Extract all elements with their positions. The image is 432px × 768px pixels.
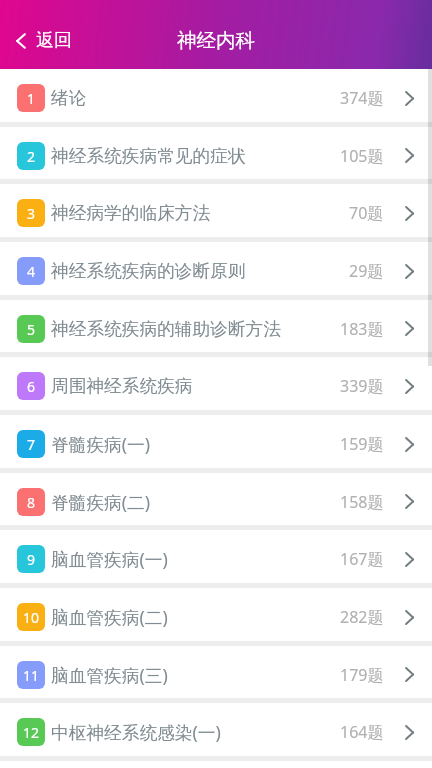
staticText: 绪论	[51, 87, 87, 109]
staticText: 158题	[340, 491, 384, 513]
staticText: 神经内科	[177, 28, 255, 53]
staticText: 1	[27, 89, 36, 108]
button[interactable]: 7	[0, 415, 432, 473]
button[interactable]: 1	[0, 69, 432, 127]
button[interactable]: 5	[0, 300, 432, 357]
button[interactable]: 4	[0, 242, 432, 300]
staticText: 脑血管疾病(三)	[51, 663, 168, 687]
staticText: 179题	[340, 664, 384, 686]
staticText: 神经系统疾病常见的症状	[51, 145, 246, 167]
staticText: 4	[27, 262, 36, 281]
button[interactable]: 9	[0, 530, 432, 588]
button[interactable]: 6	[0, 357, 432, 415]
staticText: 374题	[340, 87, 384, 109]
staticText: 脊髓疾病(二)	[51, 490, 151, 514]
staticText: 2	[27, 147, 36, 166]
staticText: 5	[27, 320, 36, 339]
staticText: 11	[23, 666, 40, 685]
staticText: 164题	[340, 721, 384, 743]
staticText: 返回	[36, 29, 72, 52]
button[interactable]: 2	[0, 127, 432, 184]
staticText: 70题	[349, 202, 384, 224]
button[interactable]: 11	[0, 646, 432, 703]
staticText: 8	[27, 493, 36, 512]
button[interactable]: 12	[0, 703, 432, 761]
staticText: 282题	[340, 606, 384, 628]
staticText: 脑血管疾病(一)	[51, 547, 168, 571]
staticText: 12	[23, 723, 40, 742]
staticText: 3	[27, 204, 36, 223]
staticText: 中枢神经系统感染(一)	[51, 720, 221, 744]
staticText: 9	[27, 550, 36, 569]
staticText: 脊髓疾病(一)	[51, 432, 151, 456]
staticText: 神经系统疾病的诊断原则	[51, 260, 246, 282]
staticText: 183题	[340, 318, 384, 340]
button[interactable]: 8	[0, 473, 432, 530]
staticText: 105题	[340, 145, 384, 167]
button[interactable]: 返回	[12, 26, 76, 55]
staticText: 7	[27, 435, 36, 454]
staticText: 周围神经系统疾病	[51, 375, 193, 397]
staticText: 159题	[340, 433, 384, 455]
staticText: 29题	[349, 260, 384, 282]
button[interactable]: 10	[0, 588, 432, 646]
staticText: 神经病学的临床方法	[51, 202, 211, 224]
button[interactable]: 3	[0, 184, 432, 242]
staticText: 339题	[340, 375, 384, 397]
staticText: 神经系统疾病的辅助诊断方法	[51, 318, 281, 340]
staticText: 6	[27, 377, 36, 396]
staticText: 10	[23, 608, 40, 627]
staticText: 167题	[340, 548, 384, 570]
staticText: 脑血管疾病(二)	[51, 605, 168, 629]
